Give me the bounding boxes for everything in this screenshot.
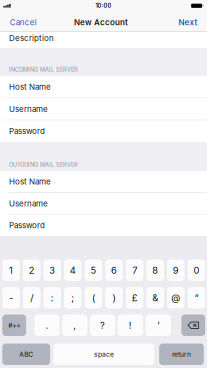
staticText: ’ [157, 320, 159, 331]
staticText: 7 [132, 265, 137, 276]
staticText: 5 [90, 265, 96, 276]
button[interactable]: 4 [64, 259, 82, 281]
staticText: : [51, 292, 54, 303]
staticText: #+= [8, 321, 20, 329]
button[interactable]: 8 [146, 259, 164, 281]
staticText: ABC [19, 350, 33, 358]
button[interactable]: ! [118, 314, 143, 336]
button[interactable]: £ [126, 287, 143, 308]
button[interactable]: Description [0, 32, 207, 48]
button[interactable]: 6 [105, 259, 123, 281]
staticText: space [94, 350, 114, 358]
button[interactable]: , [62, 314, 87, 336]
staticText: Username [9, 104, 48, 114]
button[interactable]: ’ [145, 314, 171, 336]
button[interactable]: Host Name [0, 171, 207, 192]
staticText: 0 [193, 265, 199, 276]
staticText: ! [129, 320, 132, 331]
staticText: ) [112, 292, 115, 303]
button[interactable]: 9 [167, 259, 185, 281]
button[interactable]: Password [0, 120, 207, 142]
staticText: / [30, 292, 33, 303]
button[interactable]: Next [169, 14, 207, 31]
button[interactable]: & [146, 287, 164, 308]
button[interactable]: ( [85, 287, 102, 308]
staticText: 9 [173, 265, 179, 276]
staticText: , [73, 320, 76, 331]
button[interactable]: Username [0, 98, 207, 120]
staticText: ? [100, 320, 105, 331]
staticText: Host Name [9, 82, 51, 92]
button[interactable]: ) [105, 287, 123, 308]
staticText: Username [9, 199, 48, 208]
button[interactable]: 3 [43, 259, 61, 281]
button[interactable]: 2 [23, 259, 40, 281]
staticText: Password [9, 220, 45, 230]
staticText: . [45, 320, 48, 331]
button[interactable]: space [53, 343, 154, 365]
button[interactable]: “ [188, 287, 205, 308]
button[interactable]: #+= [2, 314, 26, 336]
button[interactable]: 1 [2, 259, 20, 281]
staticText: & [152, 292, 158, 303]
staticText: 4 [70, 265, 76, 276]
staticText: Host Name [9, 177, 51, 186]
staticText: Password [9, 126, 45, 136]
staticText: ; [71, 292, 74, 303]
staticText: @ [171, 292, 180, 303]
staticText: 8 [152, 265, 158, 276]
staticText: “ [194, 292, 198, 303]
staticText: New Account [74, 18, 128, 27]
staticText: 6 [111, 265, 117, 276]
staticText: Description [9, 33, 54, 43]
staticText: Next [179, 18, 198, 27]
staticText: 10:00 [95, 2, 111, 9]
button[interactable]: 0 [188, 259, 205, 281]
staticText: Cancel [10, 18, 37, 27]
button[interactable]: . [34, 314, 60, 336]
button[interactable]: / [23, 287, 40, 308]
staticText: INCOMING MAIL SERVER [9, 66, 78, 73]
button[interactable]: : [43, 287, 61, 308]
staticText: 1 [9, 265, 13, 276]
button[interactable]: ; [64, 287, 82, 308]
button[interactable]: Cancel [0, 14, 47, 31]
button[interactable]: Host Name [0, 76, 207, 98]
button[interactable]: Delete [181, 314, 205, 336]
staticText: 3 [49, 265, 55, 276]
button[interactable]: Username [0, 193, 207, 214]
staticText: 2 [29, 265, 35, 276]
button[interactable]: return [159, 343, 204, 365]
button[interactable]: Password [0, 215, 207, 236]
button[interactable]: - [2, 287, 20, 308]
staticText: OUTGOING MAIL SERVER [9, 161, 78, 168]
button[interactable]: 7 [126, 259, 143, 281]
button[interactable]: 5 [85, 259, 102, 281]
staticText: £ [132, 292, 138, 303]
button[interactable]: ? [90, 314, 115, 336]
button[interactable]: ABC [2, 343, 50, 365]
button[interactable]: @ [167, 287, 185, 308]
staticText: ( [92, 292, 95, 303]
staticText: return [172, 350, 191, 358]
staticText: - [9, 292, 13, 303]
